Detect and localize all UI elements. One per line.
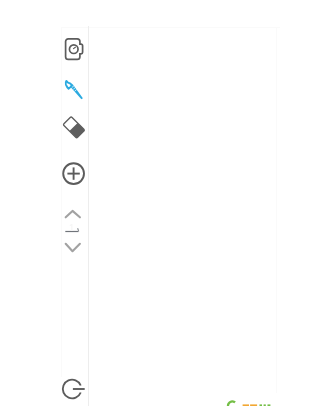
- button[interactable]: Brush: [63, 78, 85, 100]
- button[interactable]: Previous page: [63, 206, 81, 220]
- button[interactable]: Next page: [63, 238, 81, 254]
- button[interactable]: Eraser: [61, 114, 87, 140]
- button[interactable]: Camera: [63, 36, 85, 62]
- button[interactable]: Rotate: [62, 379, 86, 403]
- button[interactable]: Add page: [62, 162, 86, 186]
- staticText: 1: [69, 221, 75, 233]
